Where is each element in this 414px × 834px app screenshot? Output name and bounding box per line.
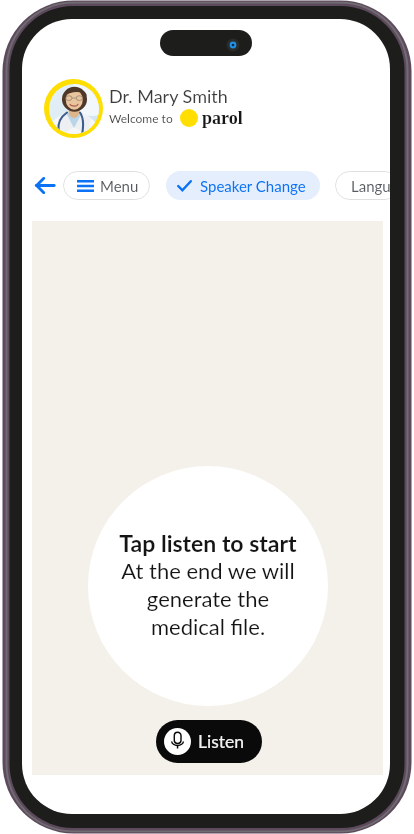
button[interactable]: Language — [335, 171, 390, 200]
staticText: Tap listen to start — [119, 529, 297, 557]
button[interactable]: Listen — [156, 720, 262, 763]
staticText: Language — [351, 177, 390, 195]
staticText: Speaker Change — [200, 177, 306, 195]
staticText: At the end we will generate the medical … — [119, 557, 297, 640]
button[interactable]: Menu — [63, 171, 150, 200]
staticText: Menu — [100, 177, 139, 195]
staticText: parol — [202, 108, 243, 128]
staticText: Welcome to — [109, 111, 173, 125]
staticText: Listen — [198, 731, 244, 752]
staticText: Dr. Mary Smith — [109, 85, 228, 107]
button[interactable]: Speaker Change — [166, 171, 320, 200]
button[interactable]: Back — [32, 169, 58, 201]
